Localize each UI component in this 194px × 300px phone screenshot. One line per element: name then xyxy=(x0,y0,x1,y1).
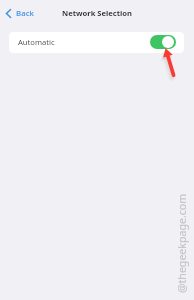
button[interactable]: Automatic toggle xyxy=(150,35,176,49)
button[interactable]: Automatic xyxy=(9,32,184,53)
staticText: Network Selection xyxy=(62,8,133,18)
staticText: @thegeekpage.com xyxy=(175,193,189,293)
staticText: Automatic xyxy=(18,37,55,47)
button[interactable]: Back xyxy=(0,6,38,21)
staticText: Back xyxy=(16,8,34,19)
